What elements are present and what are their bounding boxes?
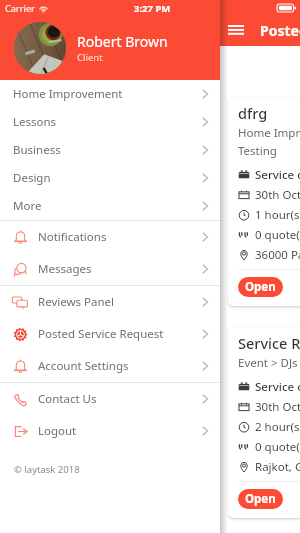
staticText: Contact Us: [38, 391, 97, 407]
staticText: 30th Oct, 2018: [255, 399, 300, 415]
button[interactable]: Notifications: [0, 221, 220, 253]
button[interactable]: Account Settings: [0, 350, 220, 382]
button[interactable]: Home Improvement: [0, 80, 220, 108]
staticText: Open: [245, 279, 276, 295]
button[interactable]: Design: [0, 164, 220, 192]
button[interactable]: Business: [0, 136, 220, 164]
button[interactable]: Reviews Panel: [0, 286, 220, 318]
staticText: Robert Brown: [77, 32, 168, 51]
staticText: Event > DJs: [238, 355, 298, 371]
button[interactable]: Logout: [0, 415, 220, 447]
button[interactable]: Contact Us: [0, 383, 220, 415]
staticText: 0 quote(s): [255, 227, 300, 243]
staticText: Service on site: [255, 379, 300, 395]
button[interactable]: Open: [238, 277, 283, 297]
staticText: Account Settings: [38, 358, 129, 374]
staticText: Testing: [238, 143, 277, 159]
staticText: 3:27 PM: [134, 2, 171, 15]
button[interactable]: Posted Service Request: [0, 318, 220, 350]
staticText: 1 hour(s): [255, 207, 300, 223]
staticText: Logout: [38, 423, 77, 439]
staticText: Rajkot, Gujarat: [255, 459, 300, 475]
staticText: © laytask 2018: [14, 463, 80, 476]
button[interactable]: Lessons: [0, 108, 220, 136]
staticText: Service on site: [255, 167, 300, 183]
staticText: Client: [77, 51, 103, 64]
staticText: 36000 Park Ave: [255, 247, 300, 263]
staticText: Design: [13, 170, 51, 186]
button[interactable]: Open: [238, 489, 283, 509]
staticText: Open: [245, 491, 276, 507]
staticText: 2 hour(s): [255, 419, 300, 435]
staticText: Posted Service Request: [260, 21, 300, 40]
button[interactable]: Open navigation menu: [228, 19, 244, 41]
staticText: Home Improvement: [13, 86, 123, 102]
staticText: 30th Oct, 2018: [255, 187, 300, 203]
staticText: Messages: [38, 261, 92, 277]
staticText: Service Request: [238, 333, 300, 353]
staticText: Lessons: [13, 114, 57, 130]
staticText: dfrg: [238, 103, 268, 123]
button[interactable]: Messages: [0, 253, 220, 285]
staticText: Home Improvement: [238, 125, 300, 141]
button[interactable]: dfrg: [228, 97, 300, 306]
staticText: Business: [13, 142, 61, 158]
staticText: 0 quote(s): [255, 439, 300, 455]
staticText: Notifications: [38, 229, 107, 245]
staticText: Reviews Panel: [38, 294, 114, 310]
staticText: More: [13, 198, 42, 214]
button[interactable]: Service Request: [228, 327, 300, 518]
staticText: Carrier: [5, 2, 35, 14]
button[interactable]: More: [0, 192, 220, 220]
staticText: Posted Service Request: [38, 326, 164, 342]
